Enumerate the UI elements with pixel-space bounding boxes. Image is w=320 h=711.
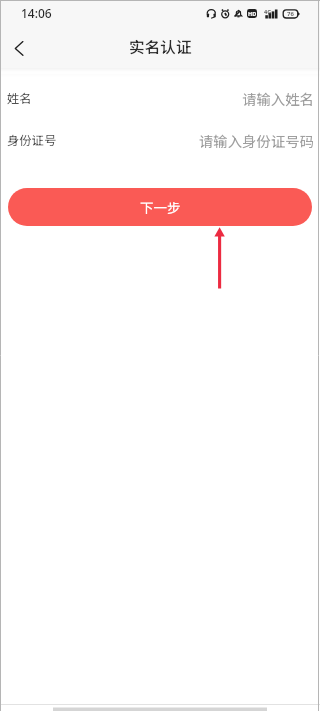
staticText: 身份证号 [7, 131, 57, 149]
staticText: HD [248, 10, 257, 17]
staticText: 请输入姓名 [40, 88, 314, 109]
staticText: 实名认证 [129, 35, 192, 58]
button[interactable]: Back [0, 25, 38, 68]
button[interactable]: 身份证号 [0, 119, 320, 161]
staticText: 下一步 [140, 197, 181, 217]
staticText: 姓名 [7, 89, 32, 107]
staticText: 76 [287, 10, 294, 18]
button[interactable]: 下一步 [8, 188, 312, 226]
staticText: 请输入身份证号码 [65, 130, 314, 151]
button[interactable]: 姓名 [0, 77, 320, 119]
staticText: 4G [264, 8, 272, 15]
staticText: 14:06 [21, 5, 52, 21]
